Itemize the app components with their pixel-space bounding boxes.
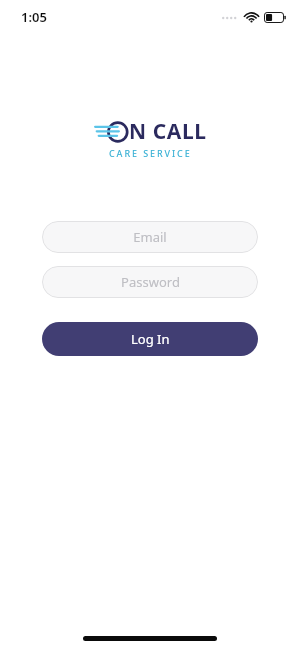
button[interactable]: Log In xyxy=(42,322,258,356)
staticText: 1:05 xyxy=(21,8,47,26)
staticText: Password xyxy=(121,273,180,291)
button[interactable]: Email xyxy=(42,221,258,253)
button[interactable]: Password xyxy=(42,266,258,298)
staticText: N CALL xyxy=(129,117,207,146)
staticText: CARE SERVICE xyxy=(109,147,192,159)
staticText: Log In xyxy=(131,330,170,348)
staticText: Email xyxy=(133,228,167,246)
